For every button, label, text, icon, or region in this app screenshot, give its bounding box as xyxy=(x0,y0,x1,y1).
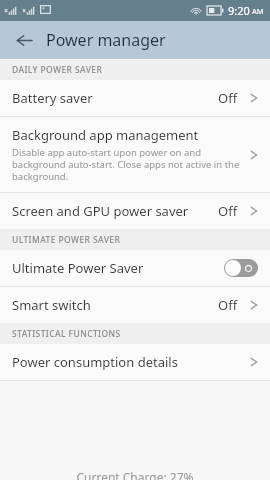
staticText: Smart switch xyxy=(12,296,91,314)
staticText: Power manager xyxy=(46,29,166,51)
staticText: ULTIMATE POWER SAVER xyxy=(12,234,121,246)
staticText: Off xyxy=(218,202,238,220)
staticText: Disable app auto-start upon power on and… xyxy=(12,146,248,183)
button[interactable]: Screen and GPU power saver xyxy=(0,193,270,229)
staticText: Screen and GPU power saver xyxy=(12,202,189,220)
staticText: Off xyxy=(218,89,238,107)
staticText: Off xyxy=(218,296,238,314)
staticText: Current Charge: 27% xyxy=(76,469,194,480)
staticText: Power consumption details xyxy=(12,353,178,371)
staticText: Background app management xyxy=(12,126,199,144)
button[interactable]: Smart switch xyxy=(0,287,270,323)
button[interactable]: Ultimate Power Saver xyxy=(0,250,270,286)
staticText: Battery saver xyxy=(12,89,93,107)
button[interactable]: Battery saver xyxy=(0,80,270,116)
button[interactable]: Ultimate Power Saver toggle xyxy=(224,259,258,277)
button[interactable]: Background app management xyxy=(0,117,270,192)
staticText: AM xyxy=(252,6,264,16)
button[interactable]: Back xyxy=(10,26,38,54)
staticText: 9:20 xyxy=(228,3,250,18)
staticText: STATISTICAL FUNCTIONS xyxy=(12,328,121,340)
staticText: DAILY POWER SAVER xyxy=(12,64,103,76)
button[interactable]: Power consumption details xyxy=(0,344,270,380)
staticText: Ultimate Power Saver xyxy=(12,259,224,277)
